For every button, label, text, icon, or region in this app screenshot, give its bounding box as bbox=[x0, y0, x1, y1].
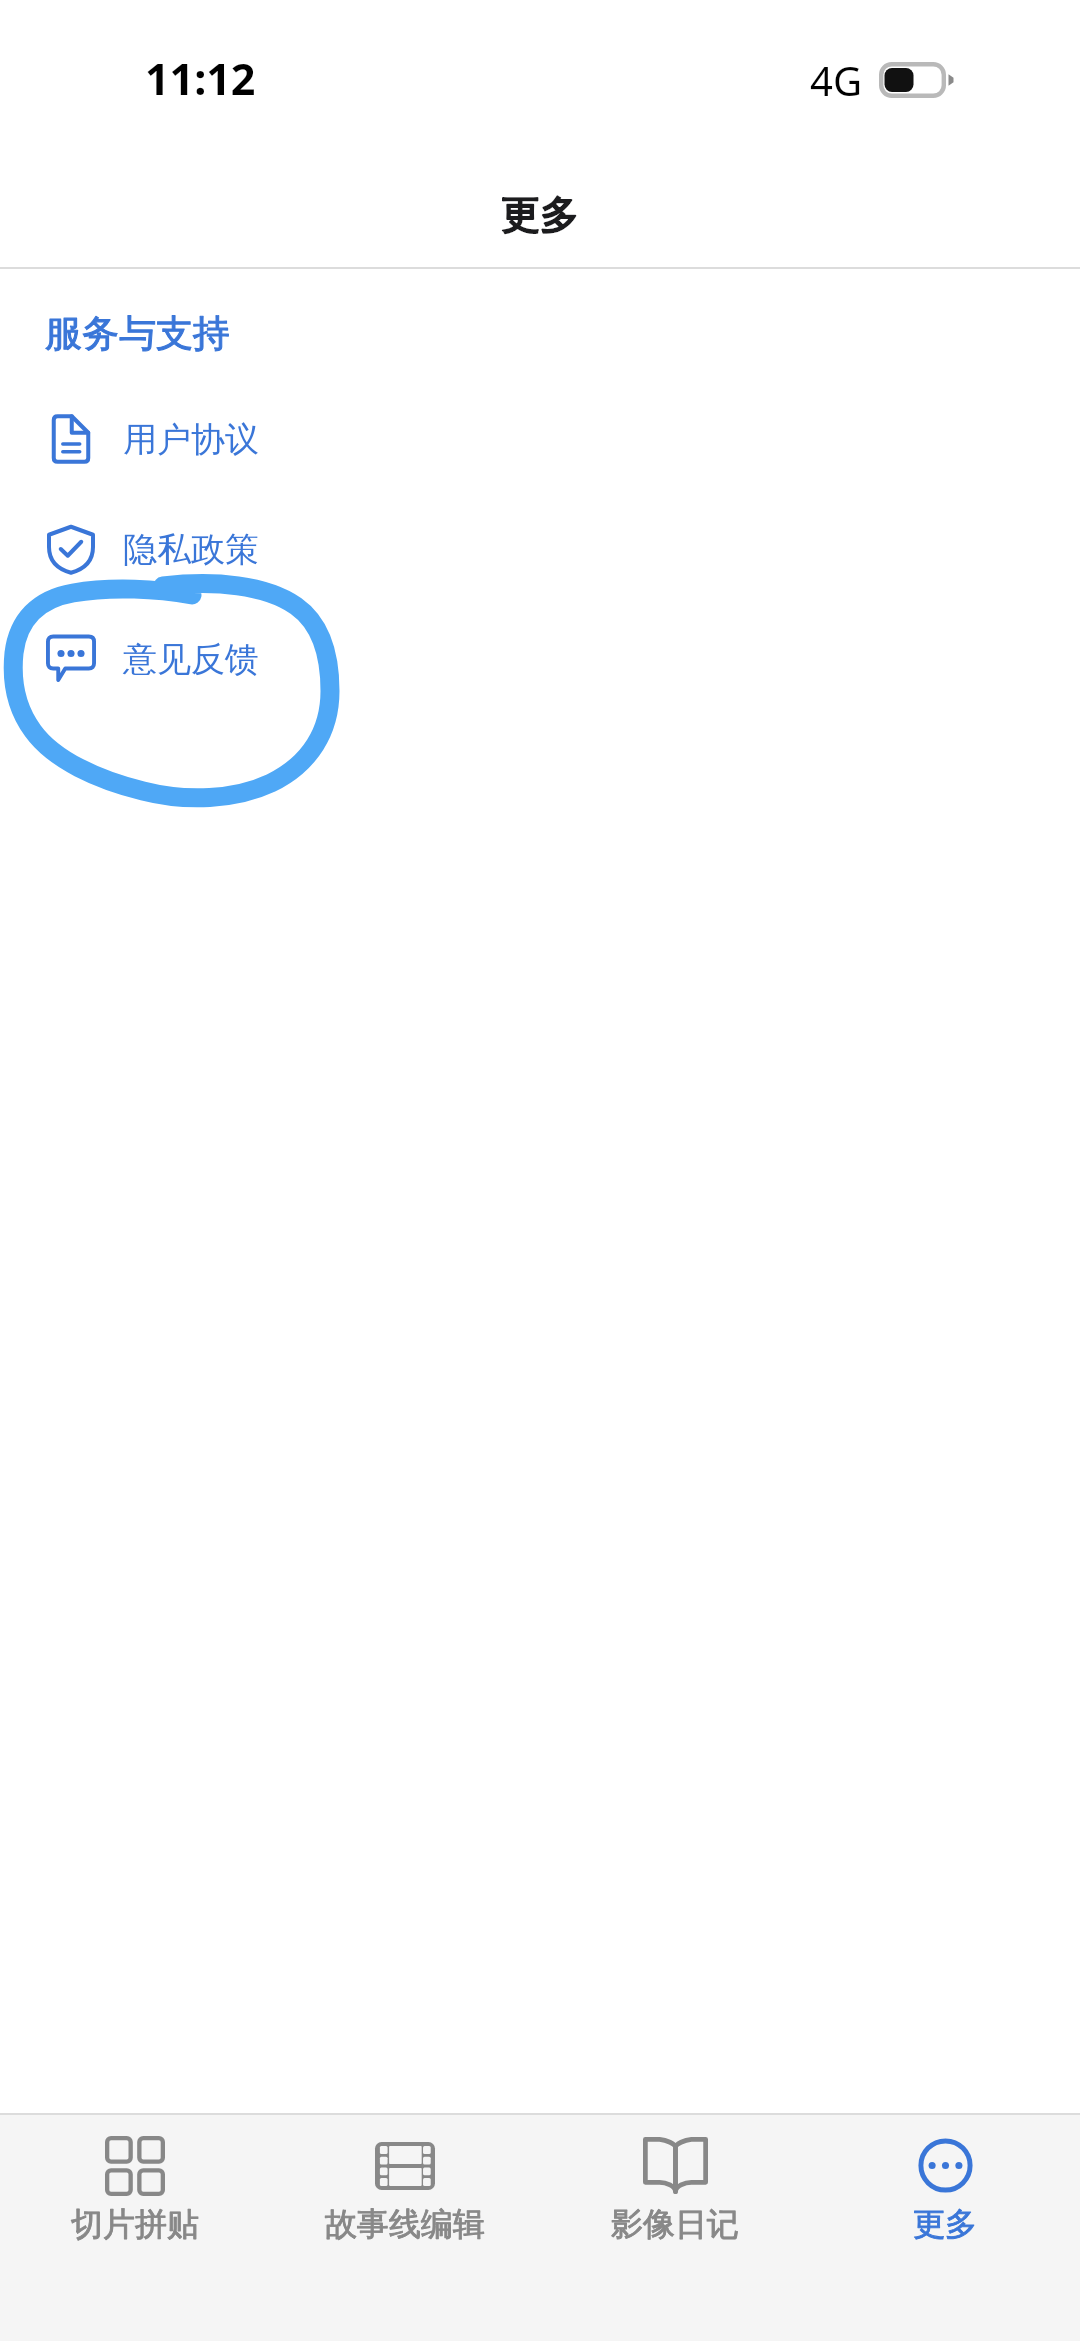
button[interactable]: 意见反馈 bbox=[0, 604, 1080, 714]
staticText: 意见反馈 bbox=[123, 638, 259, 681]
staticText: 切片拼贴 bbox=[71, 2204, 199, 2244]
button[interactable]: 切片拼贴 bbox=[0, 2115, 270, 2244]
staticText: 服务与支持 bbox=[45, 310, 230, 357]
staticText: 11:12 bbox=[145, 49, 256, 108]
staticText: 影像日记 bbox=[611, 2204, 739, 2244]
staticText: 更多 bbox=[913, 2204, 977, 2244]
button[interactable]: 更多 bbox=[810, 2115, 1080, 2244]
staticText: 故事线编辑 bbox=[325, 2204, 485, 2244]
button[interactable]: 隐私政策 bbox=[0, 494, 1080, 604]
button[interactable]: 影像日记 bbox=[540, 2115, 810, 2244]
staticText: 更多 bbox=[501, 190, 579, 239]
staticText: 影像日记 bbox=[611, 2204, 739, 2244]
staticText: 服务与支持 bbox=[45, 310, 230, 357]
button[interactable]: 用户协议 bbox=[0, 384, 1080, 494]
button[interactable]: 故事线编辑 bbox=[270, 2115, 540, 2244]
staticText: 更多 bbox=[913, 2204, 977, 2244]
staticText: 用户协议 bbox=[123, 418, 259, 461]
staticText: 切片拼贴 bbox=[71, 2204, 199, 2244]
staticText: 故事线编辑 bbox=[325, 2204, 485, 2244]
staticText: 更多 bbox=[501, 190, 579, 239]
staticText: 隐私政策 bbox=[123, 528, 259, 571]
staticText: 4G bbox=[810, 53, 862, 107]
